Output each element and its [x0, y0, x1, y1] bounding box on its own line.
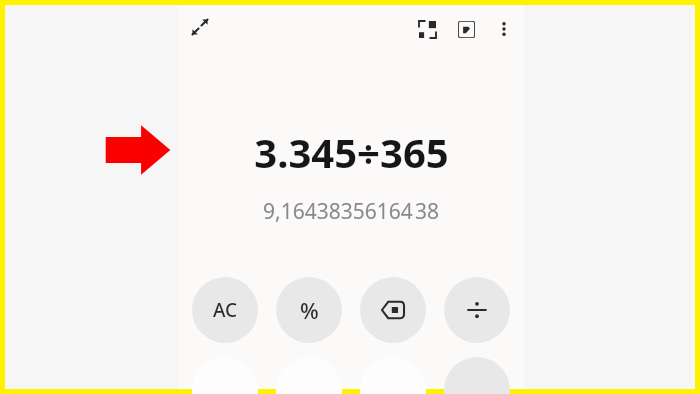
- button[interactable]: Multiply: [444, 357, 510, 394]
- staticText: %: [300, 295, 319, 325]
- button[interactable]: Resize: [410, 12, 444, 46]
- button[interactable]: Backspace: [360, 277, 426, 343]
- button[interactable]: Divide: [444, 277, 510, 343]
- button[interactable]: More options: [488, 13, 520, 45]
- button[interactable]: Screenshot: [449, 12, 483, 46]
- button[interactable]: AC: [192, 277, 258, 343]
- staticText: 9,16438356164 38: [263, 197, 439, 226]
- other: Pointer: [103, 123, 171, 177]
- staticText: AC: [213, 297, 238, 323]
- button[interactable]: Collapse: [184, 11, 216, 43]
- button[interactable]: %: [276, 277, 342, 343]
- staticText: 3.345÷365: [254, 125, 449, 179]
